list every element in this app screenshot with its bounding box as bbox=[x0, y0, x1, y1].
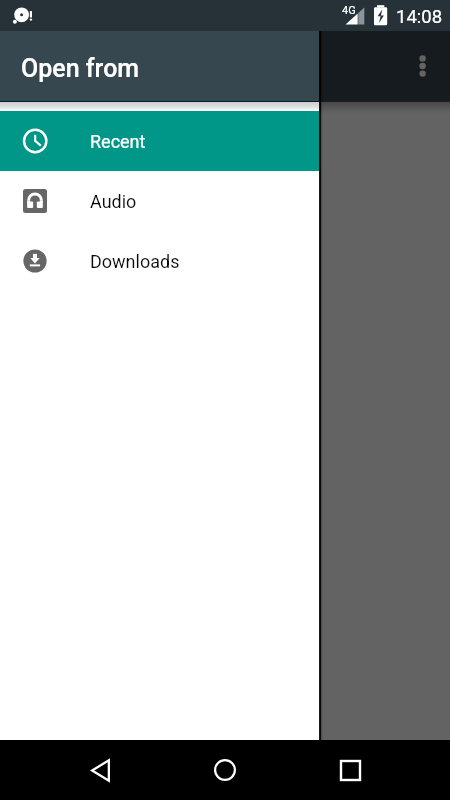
staticText: 4G bbox=[342, 4, 356, 17]
staticText: Open from bbox=[21, 54, 140, 83]
staticText: Audio bbox=[90, 191, 137, 212]
button[interactable]: Recent bbox=[0, 111, 320, 171]
button[interactable]: Recents bbox=[325, 745, 375, 795]
button[interactable]: Downloads bbox=[0, 231, 320, 291]
staticText: Downloads bbox=[90, 251, 180, 272]
button[interactable]: Audio bbox=[0, 171, 320, 231]
staticText: Recent bbox=[90, 131, 146, 152]
staticText: 14:08 bbox=[396, 6, 443, 28]
button[interactable]: Home bbox=[200, 745, 250, 795]
button[interactable]: More options bbox=[398, 42, 446, 90]
button[interactable]: Back bbox=[75, 745, 125, 795]
